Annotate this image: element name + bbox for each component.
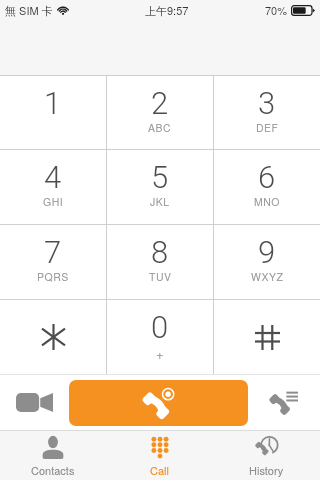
staticText: Call: [150, 462, 169, 478]
button[interactable]: Call log: [248, 375, 320, 430]
staticText: TUV: [149, 269, 172, 284]
staticText: 9: [258, 234, 276, 270]
staticText: 3: [258, 85, 276, 121]
staticText: GHI: [43, 194, 64, 209]
button[interactable]: 7: [0, 225, 106, 299]
staticText: 4: [44, 159, 62, 195]
staticText: 0: [151, 309, 169, 345]
staticText: 1: [44, 85, 62, 121]
button[interactable]: Call: [106, 430, 213, 480]
button[interactable]: Call: [69, 380, 248, 426]
button[interactable]: 2: [107, 76, 213, 149]
staticText: 7: [44, 234, 62, 270]
button[interactable]: History: [213, 430, 320, 480]
staticText: PQRS: [37, 269, 69, 284]
staticText: MNO: [254, 194, 280, 209]
staticText: 70%: [265, 2, 288, 18]
staticText: Contacts: [31, 462, 75, 478]
staticText: 5: [151, 159, 169, 195]
button[interactable]: 0: [107, 300, 213, 374]
button[interactable]: [0, 300, 106, 374]
staticText: 上午9:57: [145, 2, 189, 18]
button[interactable]: Contacts: [0, 430, 106, 480]
button[interactable]: Video call: [0, 375, 69, 430]
staticText: +: [156, 344, 165, 363]
button[interactable]: 4: [0, 150, 106, 224]
button[interactable]: 1: [0, 76, 106, 149]
staticText: DEF: [256, 120, 279, 135]
button[interactable]: 3: [214, 76, 320, 149]
staticText: ABC: [148, 120, 172, 135]
staticText: History: [249, 462, 284, 478]
button[interactable]: [214, 300, 320, 374]
staticText: 8: [151, 234, 169, 270]
button[interactable]: 5: [107, 150, 213, 224]
staticText: 無 SIM 卡: [5, 2, 53, 18]
staticText: WXYZ: [251, 269, 284, 284]
button[interactable]: 9: [214, 225, 320, 299]
staticText: JKL: [150, 194, 170, 209]
staticText: 6: [258, 159, 276, 195]
button[interactable]: 6: [214, 150, 320, 224]
button[interactable]: 8: [107, 225, 213, 299]
staticText: 2: [151, 85, 169, 121]
